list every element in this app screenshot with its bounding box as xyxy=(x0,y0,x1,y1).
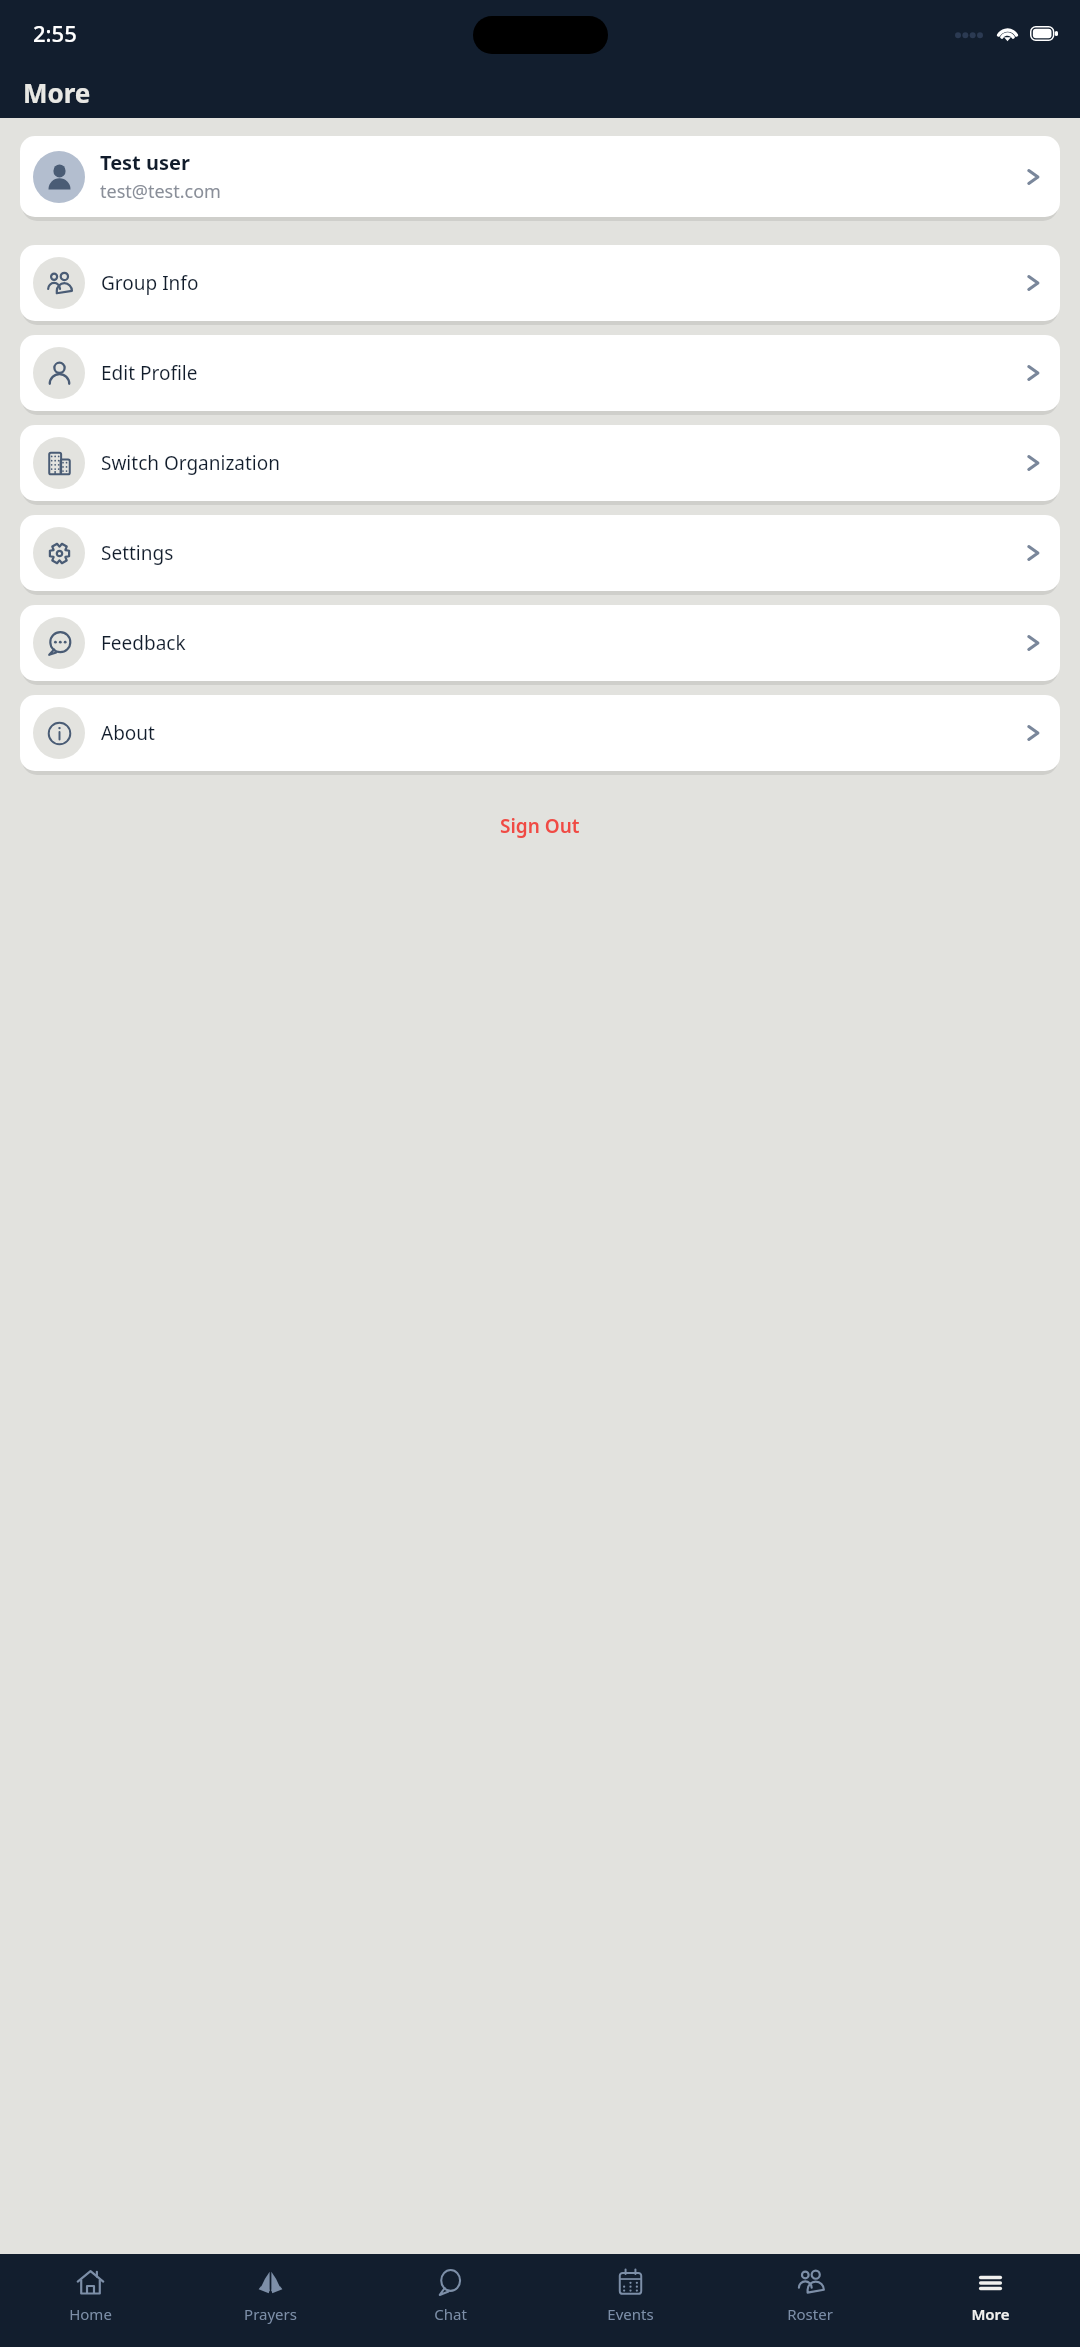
staticText: Test user xyxy=(100,149,190,176)
button[interactable]: Prayers xyxy=(180,2254,360,2324)
staticText: Group Info xyxy=(101,270,199,296)
button[interactable]: Switch Organization xyxy=(20,425,1060,501)
staticText: Home xyxy=(69,2304,112,2324)
button[interactable]: Edit Profile xyxy=(20,335,1060,411)
staticText: Edit Profile xyxy=(101,360,198,386)
button[interactable]: Group Info xyxy=(20,245,1060,321)
staticText: Settings xyxy=(101,540,174,566)
staticText: Roster xyxy=(787,2304,833,2324)
button[interactable]: Settings xyxy=(20,515,1060,591)
staticText: About xyxy=(101,720,155,746)
staticText: More xyxy=(971,2304,1010,2324)
staticText: 2:55 xyxy=(33,18,77,48)
staticText: Sign Out xyxy=(500,813,580,839)
button[interactable]: About xyxy=(20,695,1060,771)
staticText: Switch Organization xyxy=(101,450,280,476)
staticText: More xyxy=(23,75,91,110)
button[interactable]: Home xyxy=(0,2254,180,2324)
staticText: Prayers xyxy=(244,2304,297,2324)
staticText: test@test.com xyxy=(100,179,221,204)
button[interactable]: Events xyxy=(540,2254,720,2324)
button[interactable]: Feedback xyxy=(20,605,1060,681)
button[interactable]: Test user xyxy=(20,136,1060,217)
button[interactable]: Sign Out xyxy=(0,803,1080,849)
button[interactable]: Roster xyxy=(720,2254,900,2324)
button[interactable]: More xyxy=(900,2254,1080,2324)
staticText: Chat xyxy=(434,2304,467,2324)
staticText: Events xyxy=(607,2304,654,2324)
button[interactable]: Chat xyxy=(360,2254,540,2324)
staticText: Feedback xyxy=(101,630,186,656)
